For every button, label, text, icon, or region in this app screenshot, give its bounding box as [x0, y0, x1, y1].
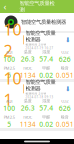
staticText: 智能空气质量检测器: [26, 30, 56, 43]
staticText: ⬇: [65, 36, 71, 44]
staticText: TVOC: [23, 65, 33, 71]
staticText: ⬇: [65, 85, 71, 93]
staticText: 湿度: [42, 49, 50, 54]
staticText: 智能空气质量检测: [19, 0, 54, 13]
staticText: 100: [3, 55, 15, 63]
staticText: 626: [59, 55, 71, 63]
staticText: 检测时间 2分钟: [26, 92, 47, 95]
staticText: 甲醛: [42, 66, 50, 71]
staticText: 100: [3, 104, 15, 112]
staticText: 2024-07-19 16:27: [26, 46, 54, 50]
staticText: 5: [7, 120, 11, 129]
staticText: 1134: [20, 71, 36, 80]
staticText: 2024-07-18 09:13: [26, 95, 54, 99]
button[interactable]: Download report: [64, 85, 72, 93]
staticText: 626: [59, 104, 71, 112]
staticText: 0.02: [39, 71, 53, 79]
staticText: CO2: [61, 98, 68, 104]
button[interactable]: Download report: [64, 36, 72, 44]
staticText: 0.051: [56, 71, 74, 79]
staticText: 智能空气质量检测器: [21, 19, 66, 25]
staticText: 101: [3, 68, 21, 110]
staticText: 噪音: [61, 66, 69, 71]
staticText: PM2.5: [4, 114, 15, 120]
staticText: 温度: [24, 49, 32, 54]
staticText: 智能空气质量检测器: [26, 79, 56, 92]
staticText: AQI: [6, 98, 12, 104]
staticText: 57.4: [39, 54, 53, 63]
staticText: 湿度: [42, 98, 50, 103]
staticText: CO2: [61, 49, 68, 55]
button[interactable]: Back: [0, 1, 10, 11]
staticText: ‹: [3, 0, 6, 13]
staticText: 26.3: [21, 103, 35, 112]
staticText: 1134: [20, 120, 36, 129]
staticText: 噪音: [61, 115, 69, 120]
staticText: 检测时间 2分钟: [26, 43, 47, 46]
staticText: TVOC: [23, 114, 33, 120]
staticText: 57.4: [39, 103, 53, 112]
staticText: PM2.5: [4, 65, 15, 71]
staticText: 5: [7, 71, 11, 80]
staticText: 甲醛: [42, 115, 50, 120]
staticText: 102: [3, 19, 21, 61]
staticText: AQI: [6, 49, 12, 55]
staticText: 温度: [24, 98, 32, 103]
staticText: 0.051: [56, 120, 74, 128]
staticText: 0.02: [39, 120, 53, 128]
staticText: 26.3: [21, 54, 35, 63]
